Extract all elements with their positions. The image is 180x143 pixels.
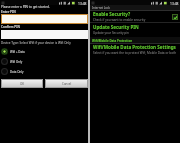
button[interactable]: Cancel [45,79,88,88]
staticText: Update your Security pin [93,31,129,35]
other: Enable security checkbox [172,14,178,20]
staticText: Wifi + Data [10,50,25,54]
staticText: Confirm PIN [1,25,20,29]
staticText: Please enter a PIN to get started. [1,5,50,9]
staticText: Wifi/Mobile Data Protection [92,39,133,43]
staticText: Enter PIN [1,10,16,14]
button[interactable]: Enable Security? [90,11,180,22]
staticText: Wifi Only [10,60,23,64]
button[interactable]: Data Only [0,67,88,76]
staticText: Enable Security? [93,11,131,17]
button[interactable]: Wifi + Data [0,47,88,56]
staticText: Internet Lock [92,6,111,10]
staticText: Select if you want the to protect Wifi, … [93,51,177,55]
staticText: Wifi/Mobile Data Protection Settings [93,44,176,50]
button[interactable]: Wifi Only [0,57,88,66]
staticText: Cancel [62,82,72,86]
staticText: Check if you want to enable security [93,18,146,22]
staticText: Update Security PIN [93,24,139,30]
staticText: OK [20,82,25,86]
staticText: Device Type: Select Wifi if your device … [1,41,71,45]
button[interactable]: Wifi/Mobile Data Protection Settings [90,44,180,55]
button[interactable]: OK [1,79,43,88]
staticText: 13:48 [78,1,87,5]
staticText: 13:48 [170,1,179,5]
button[interactable]: Update Security PIN [90,24,180,35]
staticText: Data Only [10,70,24,74]
